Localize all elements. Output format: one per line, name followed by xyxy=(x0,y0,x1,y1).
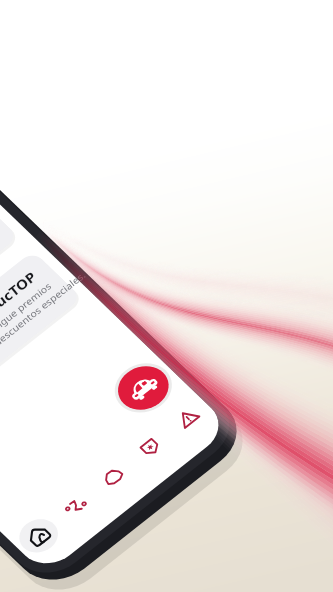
other: Car assistance app phone mockup xyxy=(0,0,333,592)
